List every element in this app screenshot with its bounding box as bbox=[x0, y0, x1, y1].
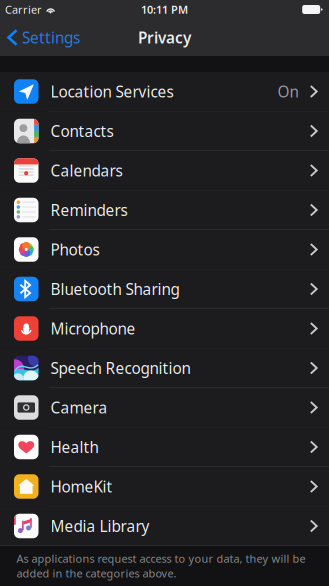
button[interactable]: Media Library bbox=[0, 506, 329, 546]
staticText: Camera bbox=[50, 397, 107, 418]
staticText: Location Services bbox=[50, 81, 173, 102]
staticText: Settings bbox=[22, 27, 80, 48]
button[interactable]: Reminders bbox=[0, 190, 329, 230]
staticText: Calendars bbox=[50, 160, 122, 181]
staticText: 10:11 PM bbox=[141, 2, 188, 17]
staticText: HomeKit bbox=[50, 476, 112, 497]
button[interactable]: HomeKit bbox=[0, 467, 329, 506]
staticText: Speech Recognition bbox=[50, 358, 190, 378]
staticText: Microphone bbox=[50, 318, 135, 339]
staticText: Photos bbox=[50, 239, 99, 260]
button[interactable]: Microphone bbox=[0, 309, 329, 348]
staticText: On bbox=[277, 81, 298, 102]
button[interactable]: Bluetooth Sharing bbox=[0, 269, 329, 309]
staticText: Privacy bbox=[138, 27, 191, 48]
staticText: Media Library bbox=[50, 516, 149, 536]
button[interactable]: Health bbox=[0, 427, 329, 467]
staticText: Health bbox=[50, 437, 98, 457]
button[interactable]: Camera bbox=[0, 388, 329, 427]
button[interactable]: Location Services bbox=[0, 72, 329, 111]
button[interactable]: Contacts bbox=[0, 111, 329, 151]
staticText: Carrier bbox=[5, 2, 42, 17]
staticText: Bluetooth Sharing bbox=[50, 279, 179, 299]
button[interactable]: Speech Recognition bbox=[0, 348, 329, 388]
staticText: As applications request access to your d… bbox=[16, 551, 305, 581]
button[interactable]: Settings bbox=[0, 19, 90, 56]
staticText: Contacts bbox=[50, 121, 113, 141]
button[interactable]: Calendars bbox=[0, 151, 329, 190]
staticText: Reminders bbox=[50, 200, 127, 220]
button[interactable]: Photos bbox=[0, 230, 329, 269]
